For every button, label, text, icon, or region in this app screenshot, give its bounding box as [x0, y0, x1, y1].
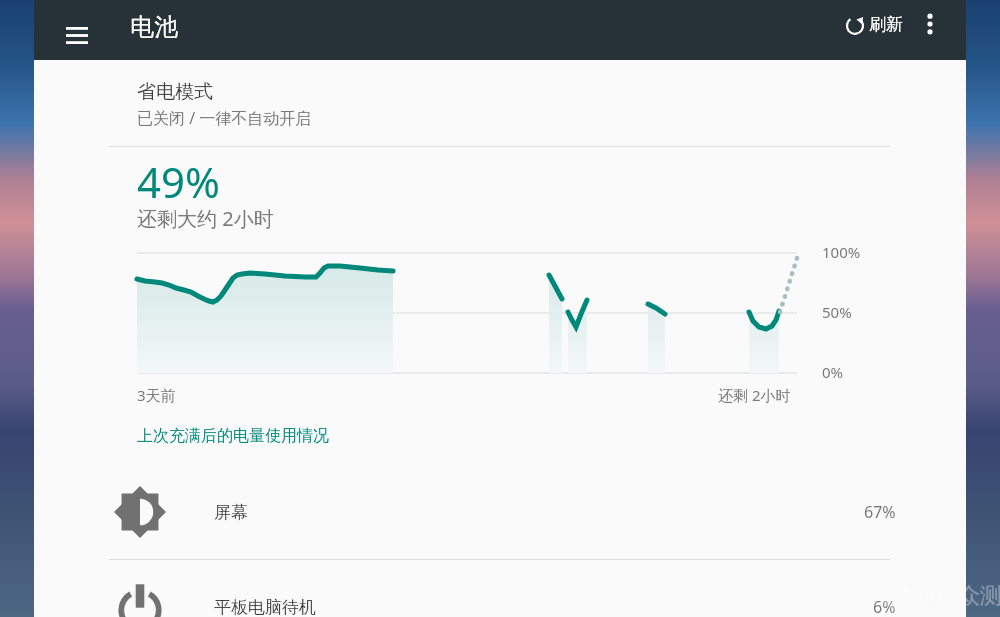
staticText: 100% — [822, 242, 861, 262]
staticText: 平板电脑待机 — [214, 597, 316, 617]
staticText: 新浪众测 — [914, 582, 1000, 610]
staticText: 3天前 — [137, 385, 176, 405]
staticText: 还剩 2小时 — [718, 385, 791, 405]
button[interactable]: Open navigation menu — [53, 11, 101, 59]
staticText: 49% — [137, 153, 220, 210]
staticText: 50% — [822, 302, 852, 322]
button[interactable]: 省电模式 — [34, 60, 966, 146]
staticText: 电池 — [130, 12, 178, 42]
button[interactable]: More options — [908, 2, 952, 46]
staticText: 6% — [873, 596, 896, 617]
staticText: 已关闭 / 一律不自动开启 — [137, 107, 312, 129]
staticText: 67% — [864, 501, 896, 523]
staticText: 省电模式 — [137, 80, 213, 104]
staticText: 刷新 — [869, 14, 903, 35]
button[interactable]: 上次充满后的电量使用情况 — [131, 420, 335, 452]
staticText: 还剩大约 2小时 — [137, 205, 274, 232]
staticText: 屏幕 — [214, 502, 248, 523]
button[interactable]: 刷新 — [837, 6, 907, 43]
staticText: 0% — [822, 362, 844, 382]
button[interactable]: 平板电脑待机 — [34, 560, 966, 617]
button[interactable]: 屏幕 — [34, 465, 966, 559]
